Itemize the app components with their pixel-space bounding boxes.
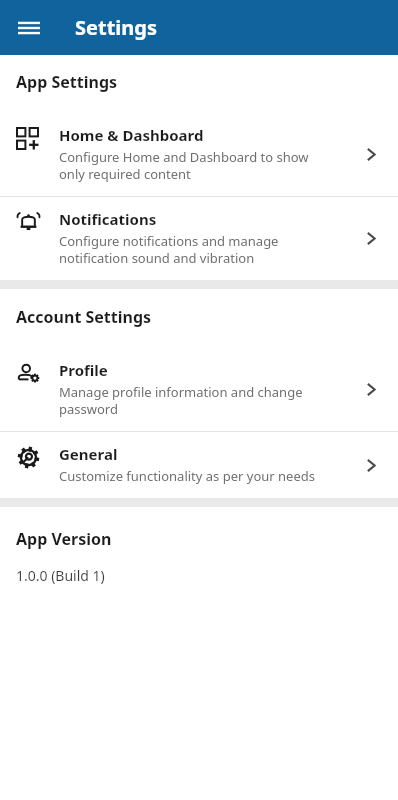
button[interactable]: Open navigation menu bbox=[9, 8, 49, 48]
button[interactable]: General bbox=[0, 432, 398, 498]
staticText: Profile bbox=[59, 360, 108, 380]
staticText: Home & Dashboard bbox=[59, 125, 204, 145]
staticText: Customize functionality as per your need… bbox=[59, 467, 315, 485]
button[interactable]: Home & Dashboard bbox=[0, 113, 398, 196]
staticText: 1.0.0 (Build 1) bbox=[16, 566, 105, 585]
staticText: Configure notifications and manage notif… bbox=[59, 232, 279, 267]
staticText: Settings bbox=[75, 14, 157, 41]
staticText: App Version bbox=[16, 528, 112, 550]
button[interactable]: Notifications bbox=[0, 197, 398, 280]
staticText: Notifications bbox=[59, 209, 157, 229]
staticText: App Settings bbox=[16, 71, 118, 93]
staticText: Manage profile information and change pa… bbox=[59, 383, 303, 418]
staticText: Configure Home and Dashboard to show onl… bbox=[59, 148, 309, 183]
staticText: Account Settings bbox=[16, 306, 152, 328]
staticText: General bbox=[59, 444, 118, 464]
button[interactable]: Profile bbox=[0, 348, 398, 431]
